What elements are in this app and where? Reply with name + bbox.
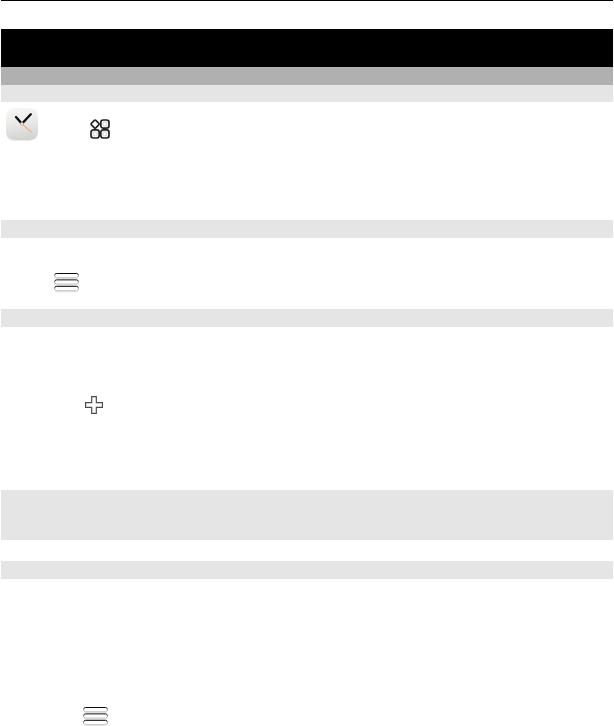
button[interactable]: Add [85,396,103,414]
button[interactable]: Menu [83,707,108,725]
button[interactable]: Clock [6,108,38,140]
button[interactable]: Menu [54,273,79,291]
button[interactable]: Widgets [91,120,109,138]
